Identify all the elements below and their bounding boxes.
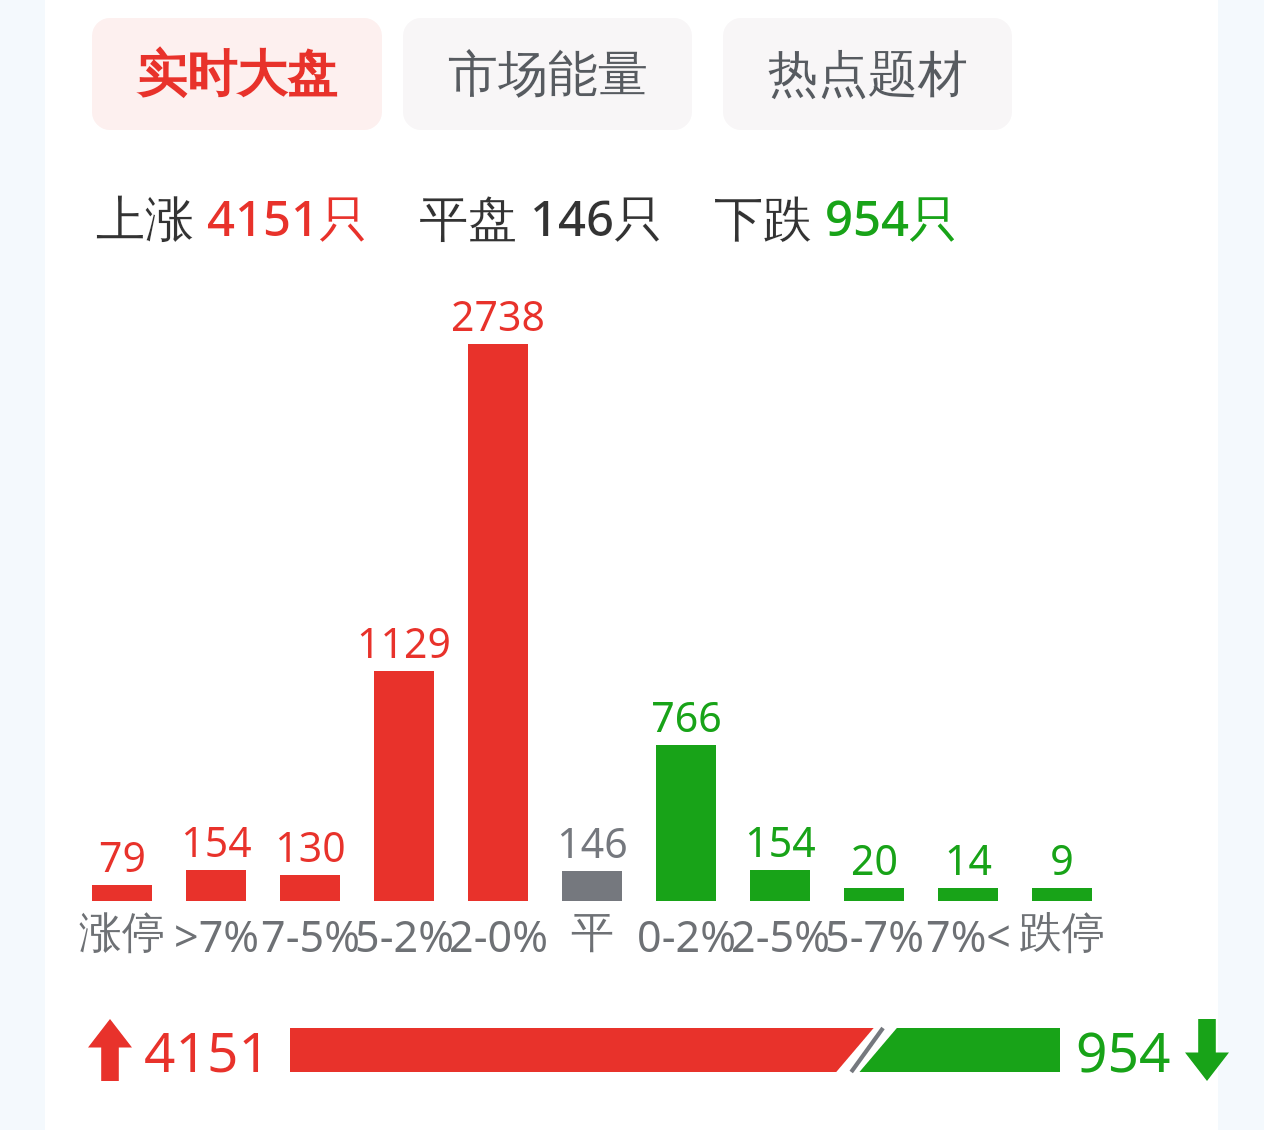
staticText: 14 bbox=[945, 831, 992, 887]
button[interactable]: 热点题材 bbox=[723, 18, 1012, 130]
staticText: 79 bbox=[99, 828, 146, 884]
staticText: 热点题材 bbox=[768, 43, 968, 106]
staticText: 7%< bbox=[926, 906, 1011, 965]
staticText: >7% bbox=[174, 906, 259, 965]
staticText: 5-2% bbox=[355, 906, 454, 965]
staticText: 跌停 bbox=[1019, 906, 1105, 960]
staticText: 130 bbox=[275, 818, 346, 874]
staticText: 954只 bbox=[825, 184, 959, 251]
staticText: 市场能量 bbox=[448, 43, 648, 106]
staticText: 9 bbox=[1050, 831, 1074, 887]
staticText: 平盘 bbox=[419, 184, 530, 251]
staticText: 20 bbox=[851, 831, 898, 887]
staticText: 涨停 bbox=[79, 906, 165, 960]
staticText: 平 bbox=[571, 906, 614, 960]
button[interactable]: 市场能量 bbox=[403, 18, 692, 130]
staticText: 7-5% bbox=[261, 906, 360, 965]
staticText: 2738 bbox=[451, 287, 545, 343]
staticText: 154 bbox=[745, 813, 816, 869]
staticText: 146 bbox=[557, 814, 628, 870]
staticText: 下跌 bbox=[714, 184, 825, 251]
staticText: 上涨 bbox=[96, 184, 207, 251]
staticText: 实时大盘 bbox=[137, 43, 337, 106]
staticText: 766 bbox=[651, 688, 722, 744]
staticText: 954 bbox=[1076, 1013, 1171, 1088]
staticText: 0-2% bbox=[637, 906, 736, 965]
staticText: 4151 bbox=[144, 1013, 270, 1088]
other: Declining stocks bbox=[1185, 1019, 1229, 1081]
staticText: 2-5% bbox=[731, 906, 830, 965]
button[interactable]: 实时大盘 bbox=[92, 18, 382, 130]
staticText: 4151只 bbox=[207, 184, 369, 251]
staticText: 1129 bbox=[357, 614, 451, 670]
staticText: 2-0% bbox=[449, 906, 548, 965]
other: Advancing stocks bbox=[88, 1019, 132, 1081]
staticText: 154 bbox=[181, 813, 252, 869]
staticText: 5-7% bbox=[825, 906, 924, 965]
staticText: 146只 bbox=[530, 184, 664, 251]
